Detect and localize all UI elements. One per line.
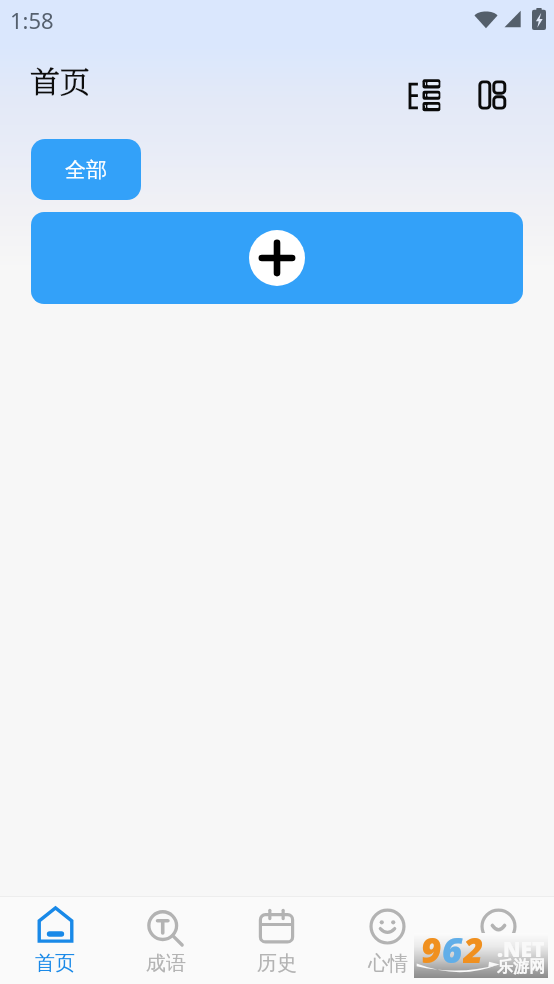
staticText: 我的 [479,951,519,976]
staticText: 乐游网 [497,957,545,977]
button[interactable]: 成语 [110,906,221,976]
staticText: 全部 [65,157,107,183]
staticText: 历史 [257,951,297,976]
button[interactable]: 心情 [332,906,443,976]
button[interactable]: 历史 [221,906,332,976]
button[interactable]: 全部 [31,139,141,200]
button[interactable]: Add [31,212,523,304]
staticText: 6 [442,926,463,971]
staticText: 9 [421,926,442,971]
staticText: 首页 [30,58,90,101]
staticText: 2 [463,926,484,971]
staticText: 成语 [146,951,186,976]
button[interactable]: 首页 [0,906,110,976]
staticText: 首页 [35,951,75,976]
staticText: 1:58 [10,5,54,35]
button[interactable]: 我的 [443,906,554,976]
staticText: .NET [497,935,545,964]
button[interactable]: Layout view [470,72,516,118]
button[interactable]: List view [401,72,447,118]
staticText: 心情 [368,951,408,976]
